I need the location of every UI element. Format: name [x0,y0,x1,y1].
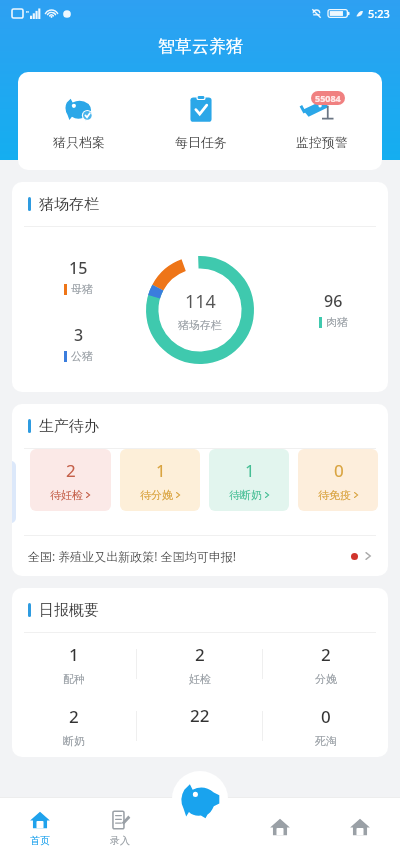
button[interactable]: 2 [12,705,136,748]
staticText: 录入 [110,834,130,847]
staticText: 96 [324,290,343,312]
button[interactable]: 首页 [0,797,80,859]
staticText: 每日任务 [175,134,227,150]
button[interactable]: 1 [120,449,200,511]
button[interactable]: 录入 [80,797,160,859]
staticText: 公猪 [71,349,93,363]
staticText: " [26,9,29,19]
staticText: 猪场存栏 [178,318,222,332]
staticText: 妊检 [189,672,211,686]
button[interactable]: 0 [263,705,388,748]
button[interactable]: 添加 [172,771,228,827]
button[interactable]: 2 [263,643,388,686]
staticText: 2 [66,459,76,482]
staticText: 猪只档案 [53,134,105,150]
staticText: 待分娩 [140,488,173,502]
button[interactable]: 每日任务 [140,72,261,170]
staticText: 死淘 [315,734,337,748]
staticText: 1 [245,459,255,482]
staticText: 断奶 [63,734,85,748]
staticText: 0 [334,459,344,482]
staticText: 配种 [63,672,85,686]
staticText: 15 [69,257,88,279]
button[interactable]: 1 [209,449,289,511]
staticText: 2 [321,643,331,666]
staticText: 5:23 [368,6,390,21]
staticText: 2 [195,643,205,666]
button[interactable]: 2 [137,643,262,686]
staticText: 114 [185,289,216,314]
button[interactable]: 1 [12,643,136,686]
staticText: 1 [69,643,79,666]
button[interactable]: 猪只档案 [18,72,140,170]
staticText: 首页 [30,834,50,847]
staticText: 55084 [315,92,341,104]
button[interactable]: 全国: 养殖业又出新政策! 全国均可申报! [28,536,372,576]
staticText: 待断奶 [229,488,262,502]
staticText: 0 [321,705,331,728]
staticText: 1 [156,459,166,482]
staticText: 22 [190,704,210,727]
button[interactable] [320,797,400,859]
staticText: 3 [74,324,84,346]
staticText: 日报概要 [39,601,99,620]
staticText: 待妊检 [50,488,83,502]
staticText: 全国: 养殖业又出新政策! 全国均可申报! [28,548,236,564]
staticText: 猪场存栏 [39,195,99,214]
button[interactable]: 22 [137,704,262,748]
button[interactable]: 2 [30,449,111,511]
staticText: 2 [69,705,79,728]
staticText: 母猪 [71,282,93,296]
button[interactable]: 0 [298,449,378,511]
button[interactable]: 55084 [261,72,382,170]
staticText: 监控预警 [296,134,348,150]
staticText: 生产待办 [39,417,99,436]
button[interactable] [240,797,320,859]
staticText: 智草云养猪 [158,36,243,57]
staticText: 分娩 [315,672,337,686]
staticText: 肉猪 [326,315,348,329]
staticText: 待免疫 [318,488,351,502]
